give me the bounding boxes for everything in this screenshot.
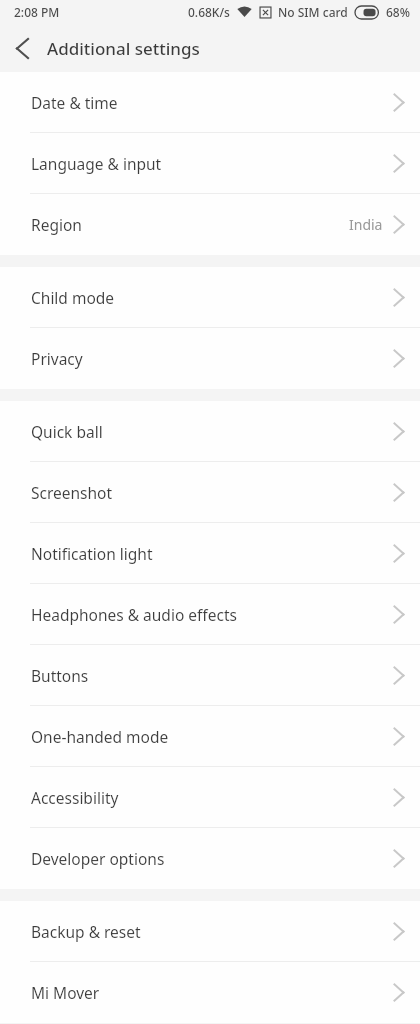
button[interactable]: Backup & reset — [0, 901, 420, 962]
button[interactable]: Headphones & audio effects — [0, 584, 420, 645]
button[interactable]: Notification light — [0, 523, 420, 584]
button[interactable]: Language & input — [0, 133, 420, 194]
staticText: Region — [31, 214, 349, 235]
staticText: Additional settings — [47, 37, 200, 60]
staticText: Language & input — [31, 153, 394, 174]
button[interactable]: Child mode — [0, 267, 420, 328]
button[interactable]: Accessibility — [0, 767, 420, 828]
button[interactable]: Back — [0, 26, 44, 70]
button[interactable]: One-handed mode — [0, 706, 420, 767]
staticText: No SIM card — [278, 4, 348, 20]
staticText: Buttons — [31, 665, 394, 686]
staticText: Privacy — [31, 348, 394, 369]
button[interactable]: Buttons — [0, 645, 420, 706]
button[interactable]: Date & time — [0, 72, 420, 133]
staticText: Backup & reset — [31, 921, 394, 942]
staticText: Developer options — [31, 848, 394, 869]
staticText: 0.68K/s — [188, 4, 230, 20]
staticText: 68% — [386, 4, 410, 20]
staticText: Date & time — [31, 92, 394, 113]
staticText: Quick ball — [31, 421, 394, 442]
button[interactable]: Privacy — [0, 328, 420, 389]
staticText: Notification light — [31, 543, 394, 564]
staticText: 2:08 PM — [14, 4, 60, 20]
staticText: Accessibility — [31, 787, 394, 808]
button[interactable]: Screenshot — [0, 462, 420, 523]
button[interactable]: Developer options — [0, 828, 420, 889]
staticText: One-handed mode — [31, 726, 394, 747]
staticText: Screenshot — [31, 482, 394, 503]
button[interactable]: Mi Mover — [0, 962, 420, 1023]
staticText: India — [349, 215, 383, 234]
staticText: Mi Mover — [31, 982, 394, 1003]
staticText: Child mode — [31, 287, 394, 308]
button[interactable]: Quick ball — [0, 401, 420, 462]
button[interactable]: Region — [0, 194, 420, 255]
staticText: Headphones & audio effects — [31, 604, 394, 625]
